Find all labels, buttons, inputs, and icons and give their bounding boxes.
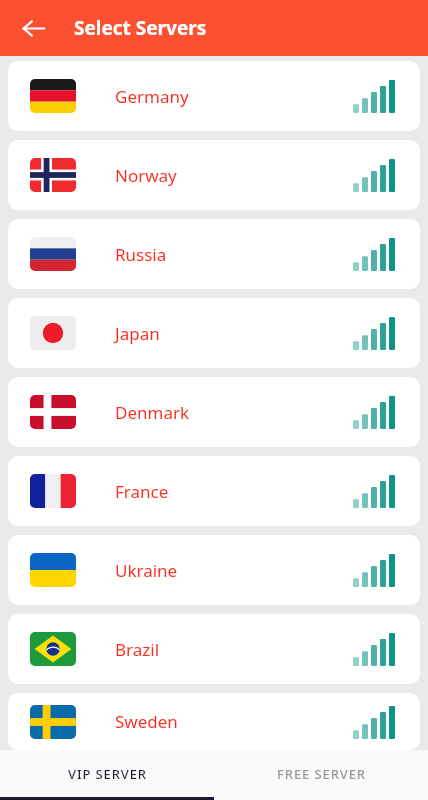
staticText: France xyxy=(115,480,169,503)
button[interactable]: Germany xyxy=(8,61,420,131)
staticText: FREE SERVER xyxy=(277,765,366,783)
staticText: Sweden xyxy=(115,710,178,733)
button[interactable]: Norway xyxy=(8,140,420,210)
staticText: Denmark xyxy=(115,401,190,424)
button[interactable]: Ukraine xyxy=(8,535,420,605)
button[interactable]: France xyxy=(8,456,420,526)
button[interactable]: Japan xyxy=(8,298,420,368)
button[interactable]: Back xyxy=(12,7,54,49)
button[interactable]: Brazil xyxy=(8,614,420,684)
staticText: Brazil xyxy=(115,638,160,661)
button[interactable]: VIP SERVER xyxy=(0,750,214,797)
button[interactable]: FREE SERVER xyxy=(214,750,428,797)
button[interactable]: Sweden xyxy=(8,693,420,750)
button[interactable]: Russia xyxy=(8,219,420,289)
staticText: Select Servers xyxy=(74,15,207,41)
staticText: Norway xyxy=(115,164,177,187)
staticText: VIP SERVER xyxy=(68,765,147,783)
staticText: Germany xyxy=(115,85,189,108)
staticText: Japan xyxy=(115,322,160,345)
staticText: Russia xyxy=(115,243,167,266)
button[interactable]: Denmark xyxy=(8,377,420,447)
staticText: Ukraine xyxy=(115,559,178,582)
